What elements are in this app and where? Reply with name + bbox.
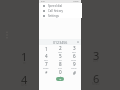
staticText: MNO xyxy=(71,59,77,61)
button[interactable]: Call xyxy=(56,77,64,81)
staticText: 1 xyxy=(21,49,28,64)
button[interactable]: 1 xyxy=(39,45,53,53)
staticText: + xyxy=(60,75,62,77)
staticText: * xyxy=(45,70,48,76)
staticText: 6 xyxy=(93,71,100,86)
staticText: 2 xyxy=(59,45,62,51)
staticText: 1 xyxy=(45,46,48,52)
button[interactable]: 2 xyxy=(53,45,67,53)
staticText: # xyxy=(73,70,76,76)
button[interactable]: 5 xyxy=(53,53,67,61)
staticText: Speed dial xyxy=(48,4,63,8)
staticText: 9 xyxy=(73,61,76,67)
staticText: 3 xyxy=(73,45,76,51)
staticText: WXYZ xyxy=(71,67,77,69)
staticText: 100% xyxy=(73,0,79,3)
button[interactable]: 4 xyxy=(39,53,53,61)
staticText: 5 xyxy=(59,53,62,59)
button[interactable]: # xyxy=(67,69,81,77)
staticText: 4 xyxy=(21,72,28,87)
staticText: 9:41 xyxy=(41,0,46,3)
staticText: GHI xyxy=(44,59,48,61)
staticText: DEF xyxy=(72,51,76,53)
staticText: MNO xyxy=(92,82,100,86)
staticText: Call history xyxy=(48,9,64,13)
staticText: TUV xyxy=(58,67,62,69)
staticText: 7 xyxy=(45,61,48,67)
staticText: 6 xyxy=(73,53,76,59)
staticText: Settings xyxy=(48,14,59,18)
button[interactable]: 7 xyxy=(39,61,53,69)
button[interactable]: 6 xyxy=(67,53,81,61)
staticText: 4 xyxy=(45,53,48,59)
button[interactable]: Speed dial xyxy=(41,3,82,8)
staticText: 0123456 xyxy=(53,40,68,45)
button[interactable]: 9 xyxy=(67,61,81,69)
staticText: 0 xyxy=(59,69,62,75)
staticText: PQRS xyxy=(43,67,49,69)
staticText: ABC xyxy=(58,51,63,53)
button[interactable]: 8 xyxy=(53,61,67,69)
button[interactable]: Call history xyxy=(41,8,82,13)
button[interactable]: 0 xyxy=(53,69,67,77)
button[interactable]: 3 xyxy=(67,45,81,53)
staticText: GHI xyxy=(21,83,27,87)
button[interactable]: * xyxy=(39,69,53,77)
staticText: DEF xyxy=(93,59,99,63)
button[interactable]: Settings xyxy=(41,13,82,18)
staticText: 8 xyxy=(59,61,62,67)
staticText: 3 xyxy=(93,48,100,63)
staticText: JKL xyxy=(59,59,62,61)
